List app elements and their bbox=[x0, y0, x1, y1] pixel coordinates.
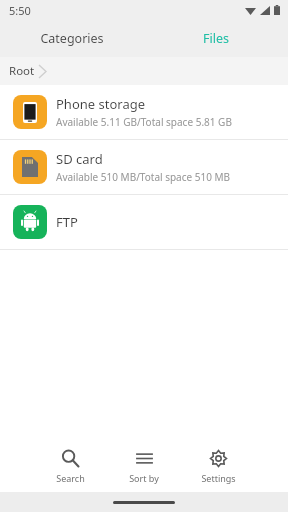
button[interactable]: Categories bbox=[0, 20, 144, 57]
button[interactable]: Search bbox=[41, 440, 99, 492]
staticText: FTP bbox=[56, 213, 78, 231]
other: Settings bbox=[209, 449, 228, 468]
staticText: Sort by bbox=[129, 472, 159, 484]
staticText: SD card bbox=[56, 150, 103, 168]
other: Sort by bbox=[135, 449, 154, 468]
button[interactable]: Phone storage bbox=[0, 85, 288, 139]
button[interactable]: Files bbox=[144, 20, 288, 57]
staticText: Search bbox=[56, 472, 85, 484]
staticText: 5:50 bbox=[9, 3, 31, 18]
other: Search bbox=[61, 449, 80, 468]
button[interactable]: Sort by bbox=[115, 440, 173, 492]
button[interactable]: Root bbox=[0, 57, 54, 85]
staticText: Available 5.11 GB/Total space 5.81 GB bbox=[56, 115, 232, 129]
button[interactable]: Settings bbox=[189, 440, 247, 492]
button[interactable]: FTP bbox=[0, 195, 288, 249]
staticText: Categories bbox=[40, 30, 104, 47]
button[interactable]: SD card bbox=[0, 140, 288, 194]
staticText: Root bbox=[9, 63, 35, 79]
staticText: Phone storage bbox=[56, 95, 146, 113]
staticText: Settings bbox=[201, 472, 236, 484]
staticText: Available 510 MB/Total space 510 MB bbox=[56, 170, 231, 184]
staticText: Files bbox=[203, 30, 229, 47]
